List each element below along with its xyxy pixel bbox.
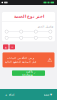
staticText: + xyxy=(5,44,7,49)
staticText: + xyxy=(5,92,7,97)
button[interactable]: تصفية xyxy=(41,89,54,100)
button[interactable]: − xyxy=(9,44,15,49)
button[interactable]: تأكيد ومتابعة xyxy=(12,70,45,76)
staticText: − xyxy=(11,44,13,49)
staticText: اختر نوع الخدمة xyxy=(13,14,43,18)
staticText: ▼ xyxy=(50,93,52,96)
button[interactable]: + xyxy=(3,89,16,100)
staticText: ✓ xyxy=(33,72,35,75)
staticText: تفاصيل الحجز xyxy=(37,25,53,28)
staticText: يرجى التأكد من البيانات xyxy=(6,56,34,59)
staticText: تصفية xyxy=(43,93,49,96)
staticText: ⚠ xyxy=(47,57,52,63)
staticText: قبل المتابعة للخطوة التالية xyxy=(4,60,35,63)
button[interactable]: + xyxy=(3,44,8,49)
staticText: إضافة xyxy=(8,93,14,96)
staticText: تأكيد ومتابعة xyxy=(21,70,32,76)
